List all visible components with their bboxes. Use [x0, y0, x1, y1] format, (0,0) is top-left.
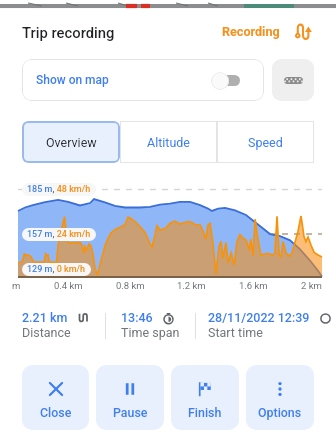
button[interactable]: Show on map	[22, 59, 264, 101]
staticText: Show on map	[36, 73, 109, 87]
button[interactable]: Pause	[96, 365, 164, 430]
staticText: 0.4 km	[54, 280, 83, 291]
button[interactable]: Finish	[171, 365, 239, 430]
staticText: Altitude	[147, 135, 190, 150]
staticText: 28/11/2022 12:39	[208, 310, 310, 325]
other: Recording route	[294, 23, 312, 41]
button[interactable]: More options	[272, 59, 314, 101]
button[interactable]: Altitude	[120, 121, 217, 163]
button[interactable]: Options	[246, 365, 314, 430]
staticText: 1.6 km	[239, 280, 268, 291]
staticText: Start time	[208, 325, 263, 340]
button[interactable]: Close	[22, 365, 89, 430]
staticText: Speed	[248, 135, 283, 150]
staticText: 129 m, 0 km/h	[27, 264, 86, 275]
staticText: 185 m, 48 km/h	[27, 184, 91, 195]
staticText: 157 m, 24 km/h	[27, 229, 91, 240]
staticText: 13:46	[121, 310, 153, 325]
staticText: Overview	[46, 135, 97, 150]
staticText: 2.21 km	[22, 310, 68, 325]
staticText: Distance	[22, 325, 71, 340]
staticText: Trip recording	[22, 24, 115, 41]
staticText: m	[12, 280, 21, 291]
staticText: Time span	[121, 325, 180, 340]
staticText: 2 km	[301, 280, 322, 291]
staticText: Options	[258, 405, 302, 420]
staticText: Pause	[113, 405, 148, 420]
button[interactable]: Overview	[22, 121, 120, 163]
staticText: 1.2 km	[177, 280, 206, 291]
staticText: 0.8 km	[116, 280, 145, 291]
staticText: Close	[40, 405, 72, 420]
staticText: Finish	[188, 405, 222, 420]
staticText: Recording	[222, 24, 280, 39]
button[interactable]: Speed	[217, 121, 314, 163]
